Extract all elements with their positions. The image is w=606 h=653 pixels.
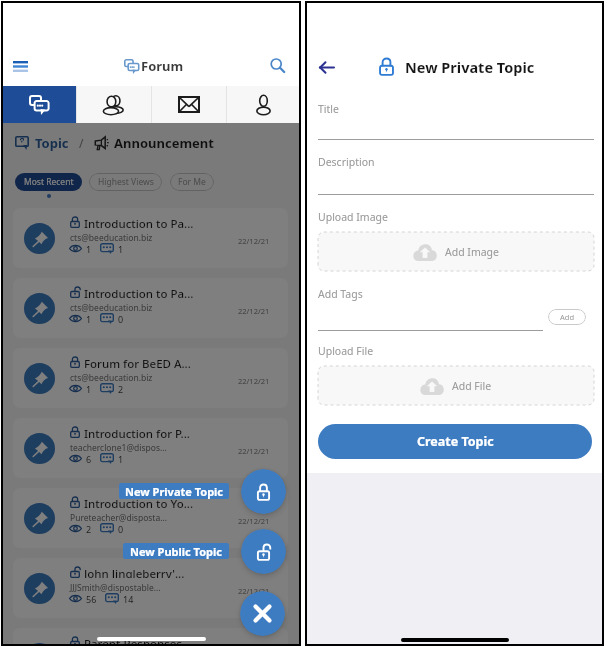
staticText: cts@beeducation.biz [70,302,153,314]
staticText: Add [560,312,575,322]
staticText: Upload File [318,344,374,358]
staticText: 1 [118,453,124,464]
button[interactable]: Add File [318,366,594,405]
button[interactable]: New Public Topic [123,543,229,559]
button[interactable]: Forum for BeED A... [13,348,288,408]
staticText: 2 [118,383,124,394]
staticText: cts@beeducation.biz [70,372,153,384]
staticText: 14 [123,593,134,604]
button[interactable]: Mail tab [151,86,226,123]
staticText: Parent Responses [84,636,183,646]
button[interactable]: Highest Views [89,173,162,191]
staticText: Title [318,102,339,116]
staticText: Add Tags [318,287,363,301]
staticText: 1 [86,383,92,394]
staticText: Introduction to Pa... [84,286,194,298]
staticText: JJJSmith@dispostable... [70,582,161,594]
staticText: New Private Topic [405,57,535,77]
button[interactable]: Introduction to Pa... [13,278,288,338]
staticText: 22/12/21 [238,376,270,386]
staticText: Add Image [445,245,500,259]
staticText: Highest Views [98,176,154,188]
staticText: 1 [86,313,92,324]
button[interactable]: Back [314,54,340,80]
staticText: Topic [35,134,69,152]
staticText: 56 [86,593,97,604]
staticText: Upload Image [318,210,388,224]
button[interactable]: Search [265,53,291,79]
staticText: Introduction for P... [84,426,190,438]
staticText: John Jingleberry'... [84,566,185,578]
staticText: For Me [178,176,206,188]
staticText: 1 [86,243,92,254]
button[interactable]: Profile tab [226,86,301,123]
button[interactable]: Introduction to Pa... [13,208,288,268]
staticText: Introduction to Yo... [84,496,194,508]
button[interactable]: New Private Topic [241,469,286,514]
button[interactable]: Most Recent [15,173,82,191]
staticText: 22/12/21 [238,586,270,596]
staticText: Forum for BeED A... [84,356,191,368]
staticText: 22/12/21 [238,306,270,316]
staticText: 1 [118,243,124,254]
staticText: / [79,135,84,151]
staticText: 22/12/21 [238,516,270,526]
button[interactable]: Close menu [240,591,285,636]
staticText: 6 [86,453,92,464]
staticText: Introduction to Pa... [84,216,194,228]
staticText: Create Topic [417,433,494,450]
button[interactable]: Menu [7,53,33,79]
button[interactable]: Contacts tab [76,86,151,123]
staticText: Forum [141,57,184,75]
button[interactable]: For Me [170,173,214,191]
staticText: Most Recent [24,176,74,188]
staticText: 22/12/21 [238,236,270,246]
button[interactable]: Forum tab [1,86,76,123]
staticText: 0 [118,523,124,534]
staticText: cts@beeducation.biz [70,232,153,244]
staticText: Add File [452,379,492,393]
button[interactable]: Create Topic [318,424,592,459]
staticText: 0 [118,313,124,324]
button[interactable]: Add [548,309,586,325]
staticText: New Private Topic [125,484,224,499]
button[interactable]: New Public Topic [241,529,286,574]
staticText: 22/12/21 [238,446,270,456]
button[interactable]: Introduction for P... [13,418,288,478]
button[interactable]: New Private Topic [119,483,229,499]
button[interactable]: Parent Responses [13,628,288,646]
button[interactable]: John Jingleberry'... [13,558,288,618]
staticText: New Public Topic [130,544,222,559]
staticText: Description [318,155,375,169]
button[interactable]: Add Image [318,232,594,271]
staticText: Announcement [114,134,214,152]
button[interactable]: Introduction to Yo... [13,488,288,548]
staticText: 2 [86,523,92,534]
staticText: Pureteacher@disposta... [70,512,168,524]
staticText: teacherclone1@dispos... [70,442,167,454]
